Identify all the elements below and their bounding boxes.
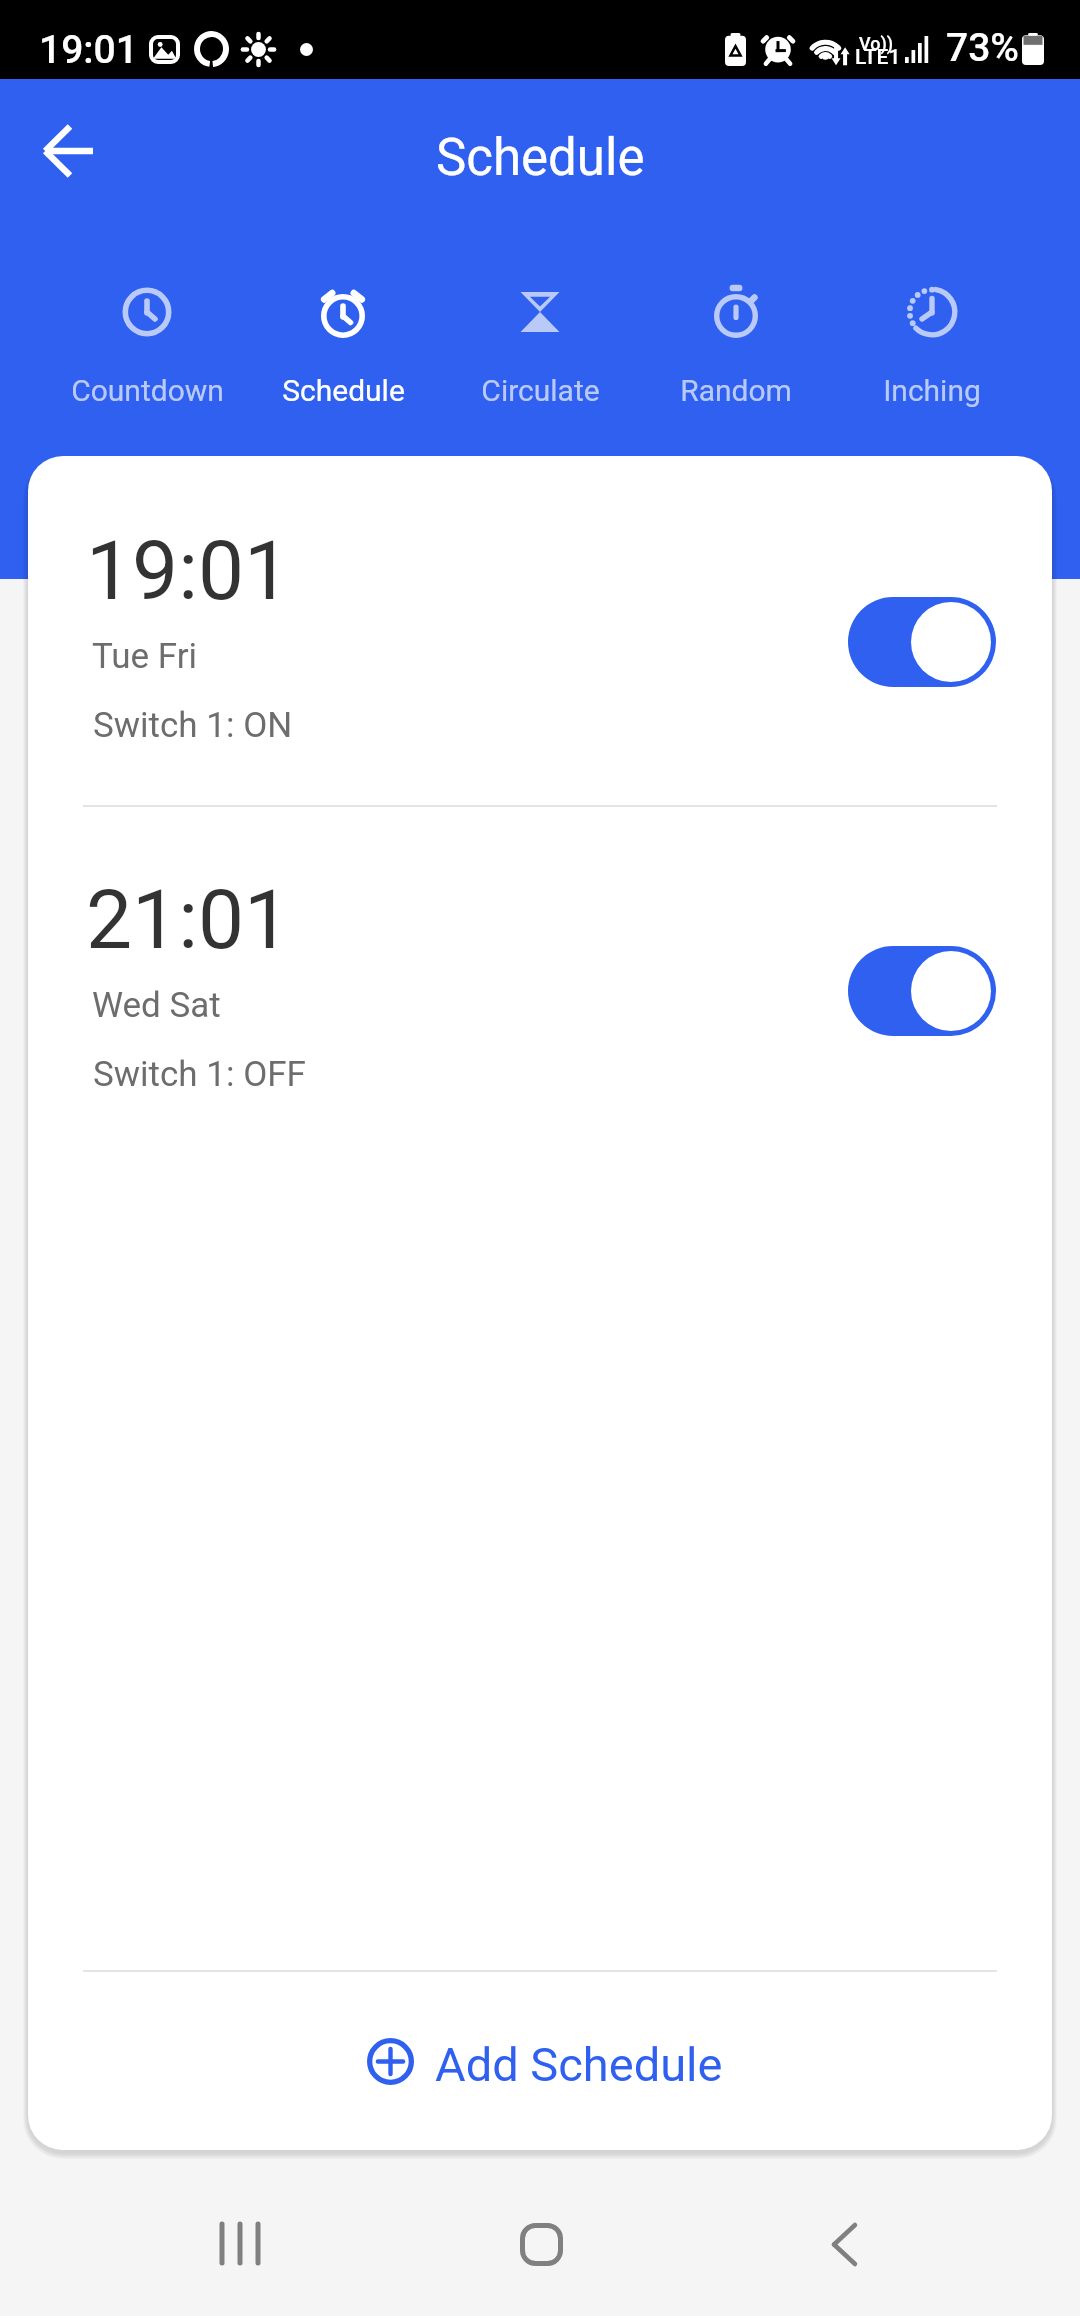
button[interactable]: Back	[10, 98, 120, 208]
staticText: Schedule	[436, 128, 645, 188]
button[interactable]: Circulate	[442, 272, 638, 422]
button[interactable]: Schedule	[245, 272, 441, 422]
button[interactable]: Home	[460, 2168, 620, 2316]
button[interactable]: Inching	[834, 272, 1030, 422]
staticText: Countdown	[71, 373, 224, 408]
staticText: Tue Fri	[92, 636, 198, 677]
staticText: Inching	[883, 373, 981, 408]
staticText: Vo))	[859, 33, 894, 54]
staticText: Random	[680, 373, 792, 408]
button[interactable]: Recent apps	[160, 2168, 320, 2316]
staticText: 19:01	[39, 27, 138, 73]
button[interactable]: 21:01	[28, 805, 1052, 1154]
button[interactable]: Toggle schedule	[848, 946, 996, 1036]
staticText: LTE1	[855, 45, 901, 70]
staticText: 19:01	[86, 523, 291, 619]
staticText: Switch 1: ON	[93, 705, 293, 746]
button[interactable]: Toggle schedule	[848, 597, 996, 687]
button[interactable]: Add Schedule	[28, 1972, 1052, 2150]
staticText: Circulate	[481, 373, 600, 408]
button[interactable]: Back	[772, 2168, 932, 2316]
staticText: 73%	[946, 25, 1020, 71]
button[interactable]: 19:01	[28, 456, 1052, 805]
staticText: Schedule	[282, 373, 405, 408]
button[interactable]: Countdown	[49, 272, 245, 422]
staticText: Switch 1: OFF	[93, 1054, 306, 1095]
button[interactable]: Random	[638, 272, 834, 422]
staticText: 21:01	[86, 872, 291, 968]
staticText: Wed Sat	[92, 985, 221, 1026]
staticText: Add Schedule	[435, 2037, 723, 2092]
